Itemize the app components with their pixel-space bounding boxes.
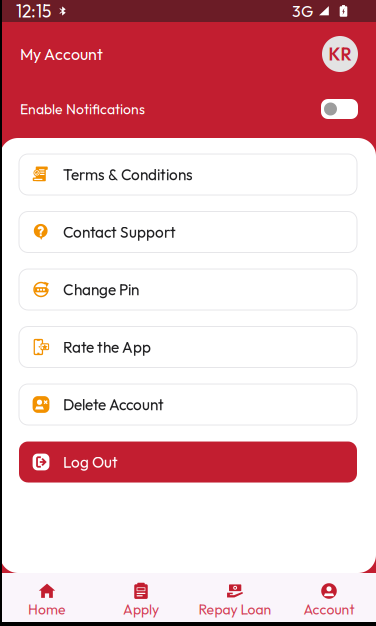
button[interactable]: Log Out — [19, 441, 357, 482]
button[interactable]: Contact Support — [19, 211, 357, 252]
button[interactable]: Account — [282, 573, 376, 622]
staticText: KR — [328, 43, 351, 65]
button[interactable]: Rate the App — [19, 326, 357, 367]
staticText: Rate the App — [63, 337, 151, 357]
staticText: 12:15 — [16, 0, 51, 22]
staticText: Change Pin — [63, 280, 139, 299]
staticText: Contact Support — [63, 222, 176, 242]
button[interactable]: Enable Notifications — [321, 99, 358, 119]
button[interactable]: Change Pin — [19, 269, 357, 310]
staticText: 3G — [292, 1, 313, 21]
staticText: Apply — [123, 600, 159, 618]
button[interactable]: Profile — [322, 36, 358, 72]
staticText: Terms & Conditions — [63, 165, 193, 184]
button[interactable]: Terms & Conditions — [19, 154, 357, 195]
button[interactable]: Repay Loan — [188, 573, 282, 622]
staticText: Account — [303, 600, 354, 618]
staticText: My Account — [20, 44, 103, 64]
staticText: Log Out — [63, 452, 118, 472]
button[interactable]: Home — [0, 573, 94, 622]
staticText: Enable Notifications — [20, 100, 145, 118]
button[interactable]: Delete Account — [19, 384, 357, 425]
staticText: Repay Loan — [198, 600, 271, 618]
staticText: Delete Account — [63, 395, 164, 414]
button[interactable]: Apply — [94, 573, 188, 622]
staticText: Home — [28, 600, 66, 618]
